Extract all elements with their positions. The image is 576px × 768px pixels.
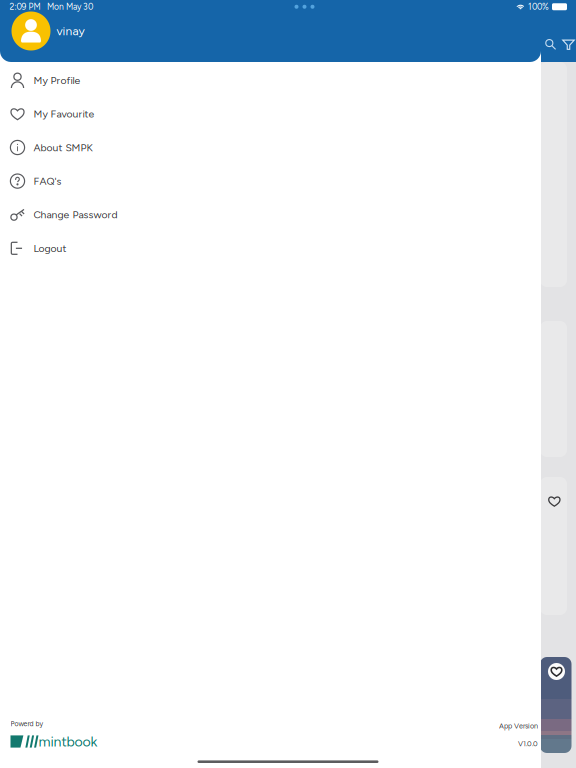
button[interactable]: My Profile [0,63,541,97]
staticText: My Profile [33,74,80,87]
staticText: My Favourite [33,108,94,120]
button[interactable]: Favourite [548,663,565,680]
staticText: Powerd by [10,720,43,728]
staticText: 2:09 PM [9,2,40,12]
button[interactable]: Search [542,36,559,53]
staticText: Mon May 30 [47,2,93,12]
button[interactable]: My Favourite [0,97,541,131]
staticText: mintbook [38,733,97,750]
staticText: Logout [33,242,66,255]
button[interactable]: Favourite [544,492,564,511]
staticText: About SMPK [33,141,92,154]
staticText: Change Password [33,208,117,221]
staticText: V1.0.0 [518,739,538,748]
button[interactable]: Logout [0,231,541,265]
staticText: FAQ's [33,175,61,187]
staticText: vinay [56,24,84,38]
button[interactable]: Filter [559,36,576,53]
staticText: App Version [499,722,538,730]
button[interactable]: About SMPK [0,131,541,164]
button[interactable]: Change Password [0,198,541,231]
button[interactable]: FAQ's [0,164,541,198]
staticText: 100% [528,2,549,12]
